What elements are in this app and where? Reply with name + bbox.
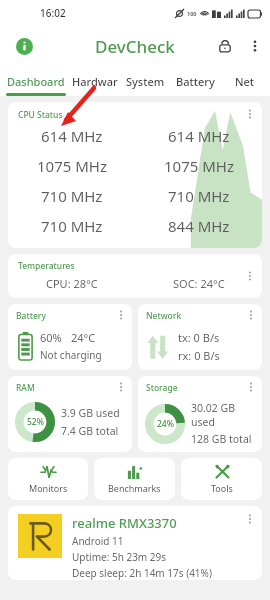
- button[interactable]: Hardware: [72, 66, 121, 96]
- button[interactable]: CPU Status: [8, 102, 262, 248]
- staticText: 16:02: [40, 6, 66, 20]
- staticText: 1075 MHz: [37, 156, 107, 176]
- staticText: 3.9 GB used: [61, 406, 120, 420]
- staticText: tx: 0 B/s: [178, 330, 220, 345]
- button[interactable]: Net: [220, 66, 270, 96]
- staticText: Temperatures: [18, 260, 75, 272]
- button[interactable]: Dashboard: [0, 66, 72, 96]
- staticText: 60%: [40, 330, 62, 345]
- staticText: Battery: [176, 74, 215, 89]
- staticText: Benchmarks: [108, 482, 161, 494]
- staticText: DevCheck: [95, 35, 175, 58]
- button[interactable]: Network: [138, 304, 262, 370]
- button[interactable]: More: [113, 307, 129, 323]
- staticText: Battery: [16, 310, 46, 322]
- button[interactable]: Temperatures: [8, 254, 262, 298]
- staticText: 30.02 GB: [191, 401, 236, 415]
- staticText: Uptime: 5h 23m 29s: [72, 550, 167, 564]
- staticText: 24°C: [71, 330, 96, 345]
- button[interactable]: More: [242, 268, 258, 284]
- staticText: CPU Status: [18, 109, 63, 121]
- staticText: 100: [187, 10, 197, 17]
- staticText: 710 MHz: [41, 186, 103, 206]
- staticText: 128 GB total: [191, 432, 252, 446]
- staticText: 614 MHz: [168, 126, 230, 146]
- staticText: Network: [146, 310, 182, 322]
- button[interactable]: Lock: [210, 31, 240, 61]
- staticText: Dashboard: [7, 74, 65, 89]
- button[interactable]: RAM: [8, 376, 132, 452]
- button[interactable]: Storage: [138, 376, 262, 452]
- button[interactable]: More options: [240, 31, 270, 61]
- staticText: CPU: 28°C: [46, 276, 98, 291]
- button[interactable]: System: [121, 66, 170, 96]
- button[interactable]: Monitors: [8, 458, 88, 500]
- button[interactable]: More: [8, 506, 262, 580]
- button[interactable]: More: [113, 379, 129, 395]
- staticText: Storage: [146, 382, 178, 394]
- staticText: Monitors: [29, 482, 68, 494]
- button[interactable]: Info: [10, 32, 38, 60]
- staticText: Not charging: [40, 348, 102, 362]
- staticText: 844 MHz: [168, 216, 230, 236]
- staticText: 614 MHz: [41, 126, 103, 146]
- staticText: Tools: [211, 482, 233, 494]
- staticText: Deep sleep: 2h 14m 17s (41%): [72, 566, 212, 580]
- staticText: 710 MHz: [168, 186, 230, 206]
- staticText: SOC: 24°C: [173, 276, 225, 291]
- staticText: Android 11: [72, 534, 124, 548]
- staticText: 24%: [157, 418, 174, 430]
- button[interactable]: More: [242, 106, 258, 122]
- staticText: 52%: [27, 416, 44, 428]
- button[interactable]: Battery: [8, 304, 132, 370]
- staticText: RAM: [16, 382, 35, 394]
- staticText: 1075 MHz: [164, 156, 234, 176]
- button[interactable]: More: [243, 379, 259, 395]
- staticText: Hardware: [72, 74, 121, 89]
- staticText: 7.4 GB total: [61, 424, 119, 438]
- button[interactable]: Benchmarks: [94, 458, 175, 500]
- staticText: used: [191, 415, 215, 429]
- staticText: rx: 0 B/s: [178, 348, 220, 363]
- staticText: Net: [235, 74, 255, 89]
- button[interactable]: Tools: [181, 458, 262, 500]
- staticText: System: [126, 74, 165, 89]
- staticText: 710 MHz: [41, 216, 103, 236]
- button[interactable]: More: [242, 511, 258, 527]
- button[interactable]: More: [243, 307, 259, 323]
- staticText: realme RMX3370: [72, 514, 177, 532]
- button[interactable]: Battery: [170, 66, 220, 96]
